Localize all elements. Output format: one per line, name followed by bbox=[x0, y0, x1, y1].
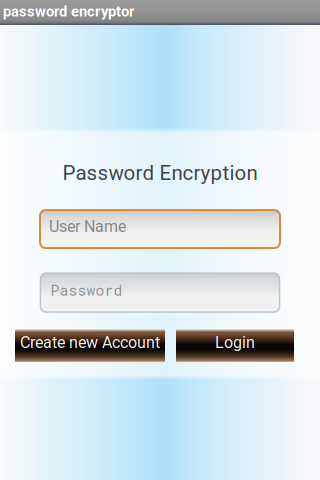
button[interactable]: Create new Account bbox=[15, 329, 165, 362]
staticText: password encryptor bbox=[3, 3, 134, 20]
button[interactable]: User Name bbox=[40, 210, 280, 248]
button[interactable]: Login bbox=[176, 329, 294, 362]
staticText: Login bbox=[215, 333, 255, 352]
staticText: Password bbox=[50, 280, 122, 300]
staticText: Create new Account bbox=[20, 333, 160, 352]
staticText: Password Encryption bbox=[62, 161, 257, 185]
button[interactable]: Password bbox=[40, 273, 279, 312]
staticText: User Name bbox=[49, 217, 126, 236]
